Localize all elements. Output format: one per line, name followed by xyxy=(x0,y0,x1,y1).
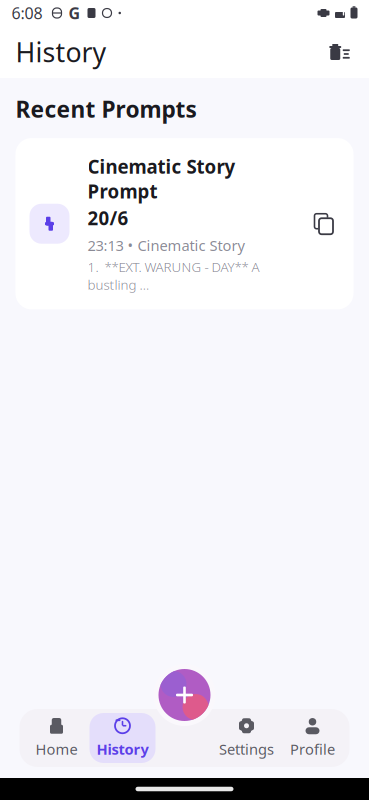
staticText: History xyxy=(15,34,106,70)
staticText: 1. **EXT. WARUNG - DAY** A bustling … xyxy=(87,258,259,293)
button[interactable]: Cinematic Story Prompt xyxy=(15,138,353,309)
staticText: Settings xyxy=(219,739,274,759)
staticText: 6:08 xyxy=(11,2,42,24)
button[interactable]: Profile xyxy=(279,713,345,763)
button[interactable]: Settings xyxy=(213,713,279,763)
staticText: Home xyxy=(35,739,77,759)
button[interactable]: Clear history xyxy=(319,32,359,72)
button[interactable]: Home xyxy=(23,713,89,763)
staticText: G xyxy=(68,2,80,24)
staticText: Recent Prompts xyxy=(15,94,196,124)
staticText: 23:13 • Cinematic Story xyxy=(87,235,244,255)
staticText: Profile xyxy=(290,739,335,759)
button[interactable]: New prompt xyxy=(153,664,215,726)
staticText: 20/6 xyxy=(87,206,128,230)
staticText: History xyxy=(96,739,148,759)
button[interactable]: History xyxy=(89,713,155,763)
staticText: Cinematic Story Prompt xyxy=(87,154,235,204)
